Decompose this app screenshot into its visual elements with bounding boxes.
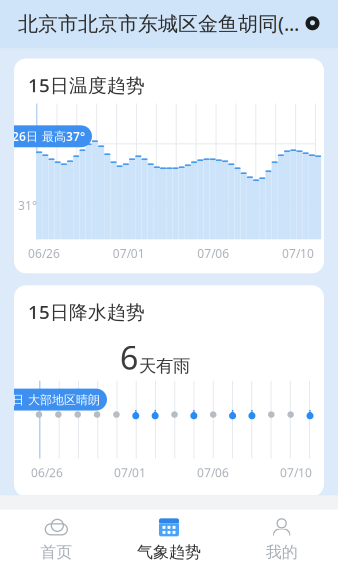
staticText: 07/10 xyxy=(280,465,312,480)
button[interactable]: 首页 xyxy=(0,509,113,572)
staticText: 气象趋势 xyxy=(137,542,201,562)
button[interactable]: 我的 xyxy=(225,509,338,572)
staticText: 北京市北京市东城区金鱼胡同(... xyxy=(18,10,299,37)
staticText: 07/10 xyxy=(282,245,314,261)
staticText: 天有雨 xyxy=(139,355,190,377)
staticText: 07/01 xyxy=(113,245,145,261)
staticText: 07/06 xyxy=(197,245,229,261)
staticText: 15日温度趋势 xyxy=(28,73,145,97)
staticText: 07/01 xyxy=(114,465,146,480)
staticText: 06/26 xyxy=(28,245,60,261)
staticText: 我的 xyxy=(266,542,298,562)
staticText: 31° xyxy=(18,197,37,213)
button[interactable]: 气象趋势 xyxy=(113,509,225,572)
staticText: 38° xyxy=(18,133,37,149)
staticText: 首页 xyxy=(40,542,72,562)
staticText: 15日降水趋势 xyxy=(28,299,145,324)
staticText: 6 xyxy=(120,336,138,379)
staticText: 06/26 xyxy=(31,465,63,480)
staticText: 6日 大部地区晴朗 xyxy=(5,392,100,407)
button[interactable]: 北京市北京市东城区金鱼胡同(... xyxy=(0,0,338,49)
staticText: 07/06 xyxy=(197,465,229,480)
staticText: /26日 最高37° xyxy=(7,128,85,144)
